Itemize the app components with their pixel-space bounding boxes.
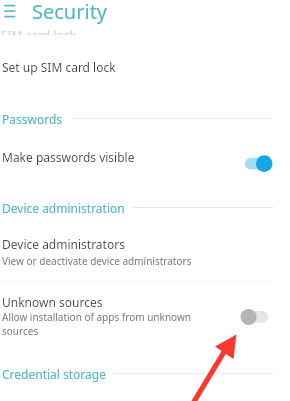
button[interactable]: Make passwords visible xyxy=(0,140,290,174)
button[interactable]: Device administrators xyxy=(0,236,290,268)
button[interactable]: Unknown sources xyxy=(0,294,290,336)
staticText: Device administrators xyxy=(2,236,125,252)
staticText: Unknown sources xyxy=(2,294,103,310)
button[interactable]: Set up SIM card lock xyxy=(0,49,290,85)
staticText: Credential storage xyxy=(2,366,106,382)
staticText: Passwords xyxy=(2,111,63,127)
staticText: Device administration xyxy=(2,200,125,216)
staticText: Make passwords visible xyxy=(2,149,260,165)
staticText: Allow installation of apps from unknown … xyxy=(2,310,192,336)
staticText: Set up SIM card lock xyxy=(2,59,116,75)
staticText: View or deactivate device administrators xyxy=(2,254,192,268)
button[interactable]: Unknown sources xyxy=(241,306,273,328)
button[interactable]: Make passwords visible xyxy=(243,152,275,174)
staticText: SIM card lock xyxy=(1,30,76,35)
staticText: Security xyxy=(32,0,108,25)
button[interactable]: Open navigation drawer xyxy=(0,0,24,22)
